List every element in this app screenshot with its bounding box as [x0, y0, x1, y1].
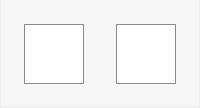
button[interactable]: Open first panel: [24, 24, 84, 84]
button[interactable]: Open second panel: [116, 24, 176, 84]
